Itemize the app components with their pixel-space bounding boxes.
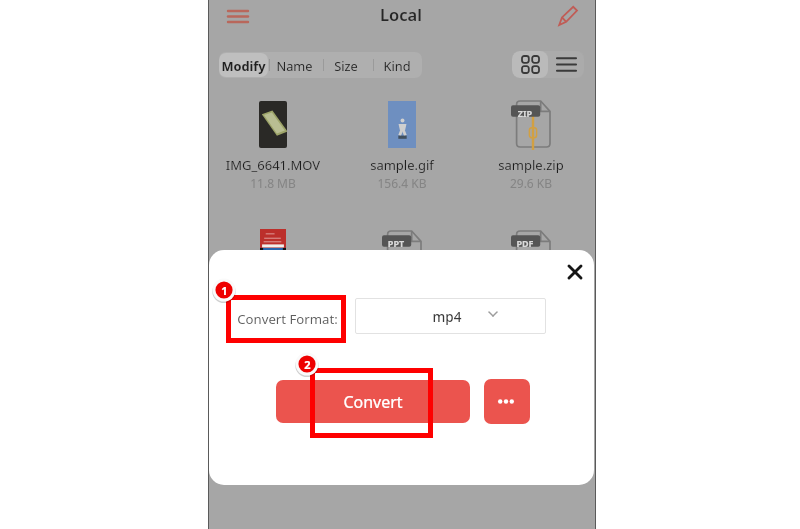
staticText: mp4 xyxy=(407,308,487,326)
button[interactable]: List view xyxy=(548,51,584,78)
staticText: Modify xyxy=(221,57,266,74)
staticText: 156.4 KB xyxy=(342,175,462,191)
button[interactable]: Convert xyxy=(276,380,470,423)
staticText: 11.8 MB xyxy=(213,175,333,191)
button[interactable] xyxy=(372,101,432,151)
button[interactable]: Size xyxy=(328,53,364,77)
button[interactable]: Menu xyxy=(216,0,260,32)
button[interactable]: Grid view xyxy=(512,51,548,78)
button[interactable]: PDF xyxy=(501,230,561,280)
button[interactable]: Kind xyxy=(378,53,416,77)
staticText: sample.zip xyxy=(471,156,591,174)
button[interactable] xyxy=(243,229,303,279)
staticText: sample.gif xyxy=(342,156,462,174)
button[interactable] xyxy=(243,101,303,151)
staticText: ZIP xyxy=(511,107,539,119)
staticText: Local xyxy=(353,3,449,25)
button[interactable]: Edit xyxy=(552,0,584,31)
staticText: Convert xyxy=(343,391,403,413)
button[interactable]: Name xyxy=(270,53,318,77)
button[interactable]: mp4 xyxy=(355,298,546,334)
button[interactable]: ZIP xyxy=(501,100,561,150)
button[interactable]: Close xyxy=(560,257,590,287)
staticText: 29.6 KB xyxy=(471,175,591,191)
staticText: IMG_6641.MOV xyxy=(213,156,333,174)
staticText: PPT xyxy=(382,237,410,249)
staticText: Name xyxy=(276,57,313,74)
staticText: Convert Format: xyxy=(237,310,338,328)
staticText: Kind xyxy=(383,57,411,74)
button[interactable]: Modify xyxy=(219,53,268,77)
staticText: 1 xyxy=(221,283,228,298)
button[interactable]: PPT xyxy=(372,230,432,280)
button[interactable]: More options xyxy=(484,379,530,424)
staticText: PDF xyxy=(511,237,539,249)
staticText: Size xyxy=(334,57,358,74)
staticText: 2 xyxy=(304,357,311,372)
